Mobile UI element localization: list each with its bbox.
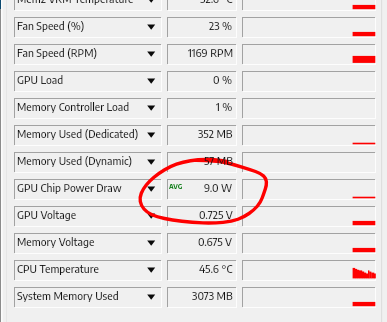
staticText: 0.675 V — [198, 235, 233, 249]
staticText: 352 MB — [198, 127, 233, 141]
staticText: 0 % — [213, 73, 233, 87]
staticText: AVG — [169, 182, 183, 191]
button[interactable]: Memory Used (Dedicated) — [14, 125, 162, 146]
button[interactable]: 1169 RPM — [167, 44, 237, 65]
button[interactable]: GPU Voltage — [14, 206, 162, 227]
staticText: Mem2 VRM Temperature — [17, 0, 134, 6]
staticText: CPU Temperature — [17, 262, 99, 276]
staticText: Fan Speed (RPM) — [17, 46, 98, 60]
staticText: System Memory Used — [17, 289, 119, 303]
staticText: GPU Chip Power Draw — [17, 181, 122, 195]
staticText: GPU Load — [17, 73, 64, 87]
button[interactable]: Memory Controller Load — [14, 98, 162, 119]
staticText: 45.6 °C — [199, 262, 233, 276]
staticText: 3073 MB — [192, 289, 233, 303]
button[interactable]: 0.725 V — [167, 206, 237, 227]
button[interactable]: 52.6 °C — [167, 0, 237, 11]
staticText: GPU Voltage — [17, 208, 77, 222]
button[interactable]: 352 MB — [167, 125, 237, 146]
button[interactable]: 0.675 V — [167, 233, 237, 254]
button[interactable]: Memory Used (Dynamic) — [14, 152, 162, 173]
button[interactable]: 0 % — [167, 71, 237, 92]
button[interactable]: CPU Temperature — [14, 260, 162, 281]
button[interactable]: 23 % — [167, 17, 237, 38]
staticText: Fan Speed (%) — [17, 19, 85, 33]
button[interactable]: 1 % — [167, 98, 237, 119]
staticText: 0.725 V — [199, 208, 233, 222]
button[interactable]: Mem2 VRM Temperature — [14, 0, 162, 11]
staticText: 1169 RPM — [188, 46, 233, 60]
staticText: Memory Used (Dedicated) — [17, 127, 139, 141]
staticText: Memory Voltage — [17, 235, 95, 249]
staticText: 1 % — [216, 100, 233, 114]
staticText: 9.0 W — [204, 181, 233, 195]
button[interactable]: GPU Chip Power Draw — [14, 179, 162, 200]
staticText: 23 % — [209, 19, 233, 33]
button[interactable]: 45.6 °C — [167, 260, 237, 281]
button[interactable]: 57 MB — [167, 152, 237, 173]
button[interactable]: Fan Speed (%) — [14, 17, 162, 38]
staticText: Memory Used (Dynamic) — [17, 154, 133, 168]
button[interactable]: 9.0 W — [167, 179, 237, 200]
button[interactable]: 3073 MB — [167, 287, 237, 308]
staticText: 57 MB — [204, 154, 233, 168]
button[interactable]: Memory Voltage — [14, 233, 162, 254]
staticText: 52.6 °C — [200, 0, 233, 6]
button[interactable]: System Memory Used — [14, 287, 162, 308]
button[interactable]: Fan Speed (RPM) — [14, 44, 162, 65]
staticText: Memory Controller Load — [17, 100, 130, 114]
button[interactable]: GPU Load — [14, 71, 162, 92]
